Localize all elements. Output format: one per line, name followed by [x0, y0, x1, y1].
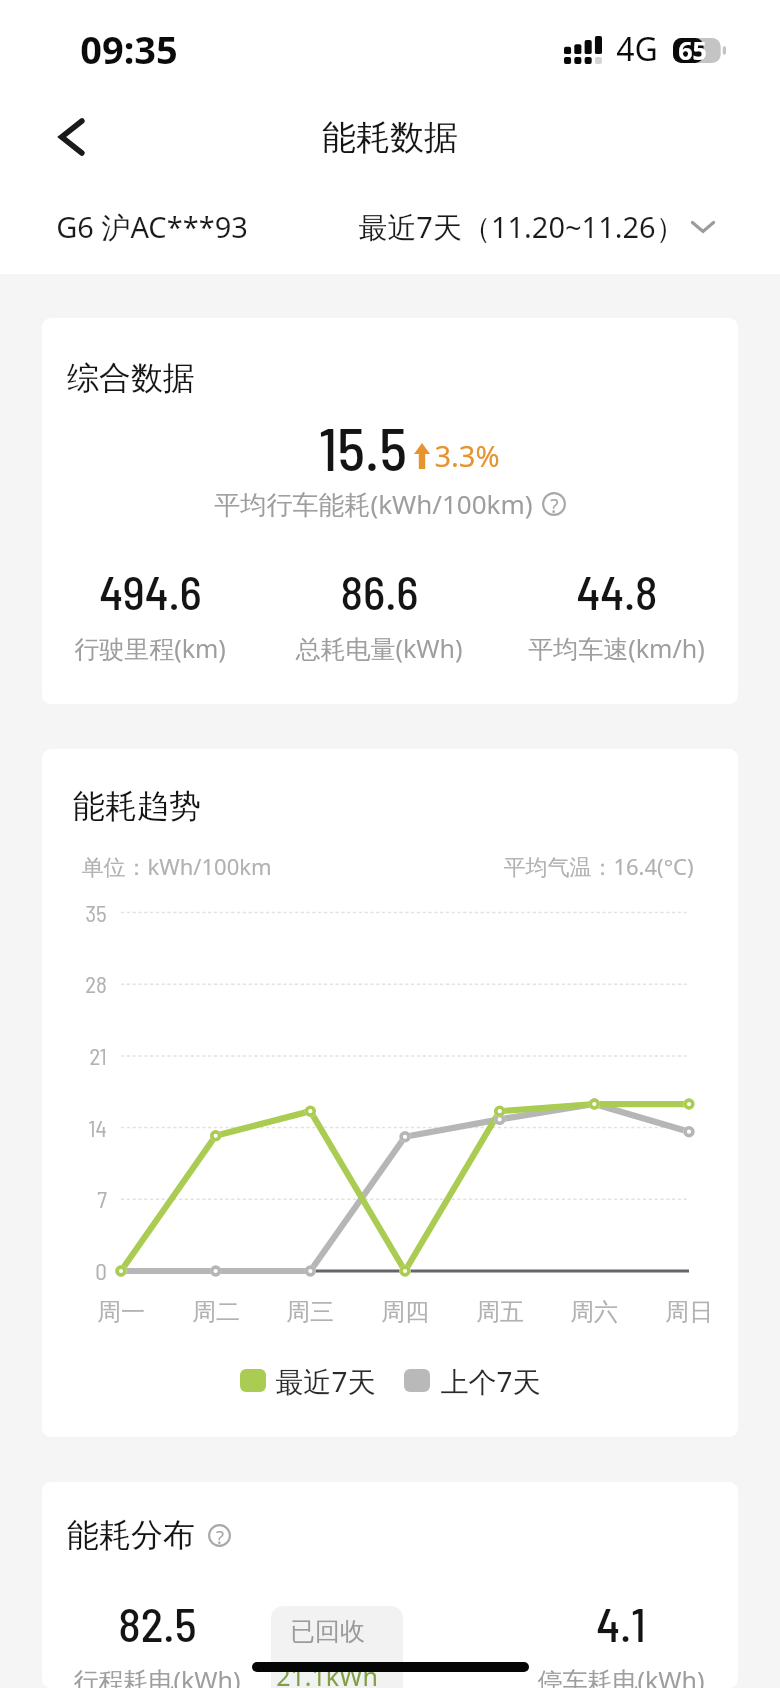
- staticText: 最近7天: [275, 1362, 376, 1398]
- staticText: 28: [85, 970, 107, 998]
- staticText: 周日: [665, 1297, 713, 1327]
- staticText: 09:35: [80, 23, 178, 75]
- staticText: 21: [89, 1042, 107, 1070]
- staticText: 单位：kWh/100km: [81, 851, 272, 881]
- staticText: 周五: [476, 1297, 524, 1327]
- staticText: 能耗数据: [322, 116, 458, 159]
- staticText: 上个7天: [440, 1362, 541, 1398]
- staticText: 44.8: [576, 563, 658, 619]
- staticText: 周四: [381, 1297, 429, 1327]
- staticText: 平均气温：16.4(°C): [503, 851, 694, 881]
- staticText: 平均行车能耗(kWh/100km): [214, 486, 533, 522]
- staticText: 平均车速(km/h): [528, 631, 705, 665]
- staticText: 行驶里程(km): [74, 631, 226, 665]
- staticText: 4.1: [596, 1595, 646, 1651]
- staticText: 周二: [192, 1297, 240, 1327]
- staticText: 总耗电量(kWh): [295, 631, 463, 665]
- staticText: 能耗趋势: [73, 786, 201, 826]
- staticText: 能耗分布: [67, 1515, 195, 1555]
- staticText: 15.5: [319, 412, 407, 483]
- staticText: 行程耗电(kWh): [73, 1663, 241, 1688]
- staticText: 0: [95, 1257, 107, 1285]
- staticText: 3.3%: [434, 436, 500, 475]
- staticText: 21.1kWh: [276, 1659, 378, 1688]
- staticText: 4G: [616, 27, 658, 71]
- staticText: ?: [550, 492, 559, 516]
- staticText: 65: [678, 33, 707, 67]
- staticText: 综合数据: [67, 358, 195, 398]
- staticText: G6 沪AC***93: [56, 207, 248, 247]
- staticText: ?: [216, 1524, 224, 1547]
- button[interactable]: 最近7天（11.20~11.26）: [358, 199, 715, 255]
- staticText: 停车耗电(kWh): [537, 1663, 705, 1688]
- staticText: 494.6: [99, 563, 202, 619]
- staticText: 周一: [97, 1297, 145, 1327]
- staticText: 周六: [570, 1297, 618, 1327]
- staticText: 35: [85, 899, 107, 927]
- staticText: 86.6: [340, 563, 419, 619]
- staticText: 最近7天（11.20~11.26）: [358, 207, 685, 247]
- staticText: 82.5: [118, 1595, 197, 1651]
- button[interactable]: Back: [38, 103, 106, 171]
- staticText: 周三: [286, 1297, 334, 1327]
- staticText: 7: [97, 1185, 107, 1213]
- staticText: 已回收: [290, 1616, 365, 1647]
- staticText: 14: [88, 1114, 107, 1142]
